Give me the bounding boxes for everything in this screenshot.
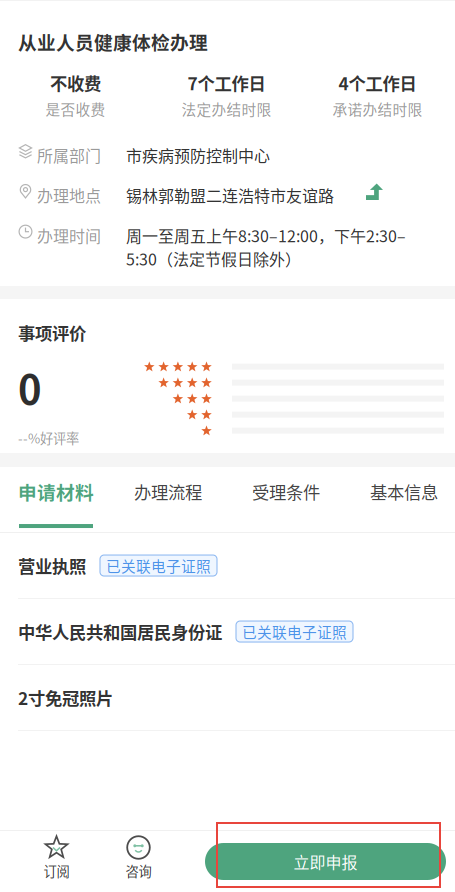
staticText: 2寸免冠照片 [18,685,113,710]
button[interactable]: 申请材料 [0,478,112,528]
button[interactable]: 订阅 [0,831,113,892]
staticText: 4个工作日 [338,70,416,95]
staticText: 已关联电子证照 [106,555,211,576]
button[interactable]: 基本信息 [348,479,455,527]
staticText: 周一至周五上午8:30–12:00，下午2:30– 5:30（法定节假日除外） [126,224,406,270]
staticText: 市疾病预防控制中心 [126,143,270,167]
staticText: 咨询 [125,861,151,880]
staticText: 所属部门 [37,143,101,167]
staticText: 办理地点 [37,183,101,207]
button[interactable]: 办理流程 [112,479,224,527]
staticText: 承诺办结时限 [332,98,422,119]
staticText: 订阅 [43,861,69,880]
staticText: 锡林郭勒盟二连浩特市友谊路 [126,183,334,207]
staticText: 受理条件 [252,479,320,504]
staticText: 办理流程 [134,479,202,504]
staticText: 申请材料 [18,478,94,505]
staticText: 0 [18,358,42,416]
button[interactable]: 立即申报 [205,843,446,884]
staticText: 是否收费 [45,98,105,119]
staticText: 法定办结时限 [181,98,271,119]
staticText: 中华人民共和国居民身份证 [18,619,222,644]
button[interactable]: 受理条件 [224,479,348,527]
staticText: 从业人员健康体检办理 [18,28,208,55]
staticText: 立即申报 [293,850,357,873]
staticText: 已关联电子证照 [242,621,347,642]
staticText: --%好评率 [18,428,79,447]
staticText: 营业执照 [18,553,86,578]
staticText: 办理时间 [37,224,101,247]
button[interactable]: 咨询 [113,831,164,892]
staticText: 不收费 [50,70,101,95]
staticText: 基本信息 [370,479,438,504]
staticText: 7个工作日 [187,70,265,95]
staticText: 事项评价 [18,320,86,345]
